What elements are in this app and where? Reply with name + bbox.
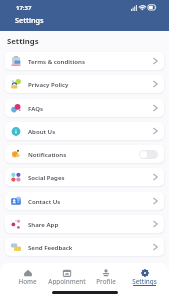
staticText: Share App — [28, 220, 59, 228]
staticText: Settings — [7, 36, 39, 46]
staticText: Settings — [15, 15, 44, 25]
button[interactable]: Send Feedback — [5, 238, 164, 256]
staticText: Terms & conditions — [28, 57, 85, 65]
button[interactable]: FAQs — [5, 99, 164, 117]
staticText: Notifications — [28, 150, 67, 158]
button[interactable]: Share App — [5, 215, 164, 233]
staticText: FAQs — [28, 104, 43, 112]
button[interactable]: About Us — [5, 122, 164, 140]
button[interactable]: Terms & conditions — [5, 52, 164, 70]
staticText: About Us — [28, 127, 56, 135]
button[interactable]: Privacy Policy — [5, 75, 164, 93]
staticText: Home — [18, 277, 37, 285]
button[interactable]: Settings — [125, 269, 164, 300]
staticText: Contact Us — [28, 197, 61, 205]
staticText: 17:37 — [16, 4, 32, 12]
button[interactable]: Appoinment — [47, 269, 86, 300]
button[interactable]: Profile — [86, 269, 125, 300]
button[interactable]: Contact Us — [5, 192, 164, 210]
staticText: Privacy Policy — [28, 80, 69, 88]
button[interactable]: Notifications toggle — [139, 150, 158, 159]
button[interactable]: Home — [8, 269, 47, 300]
staticText: Profile — [96, 277, 116, 285]
button[interactable]: Notifications — [5, 145, 164, 163]
staticText: Settings — [132, 277, 157, 285]
staticText: Appoinment — [48, 277, 86, 285]
button[interactable]: Social Pages — [5, 168, 164, 186]
staticText: Send Feedback — [28, 243, 73, 251]
staticText: Social Pages — [28, 173, 65, 181]
